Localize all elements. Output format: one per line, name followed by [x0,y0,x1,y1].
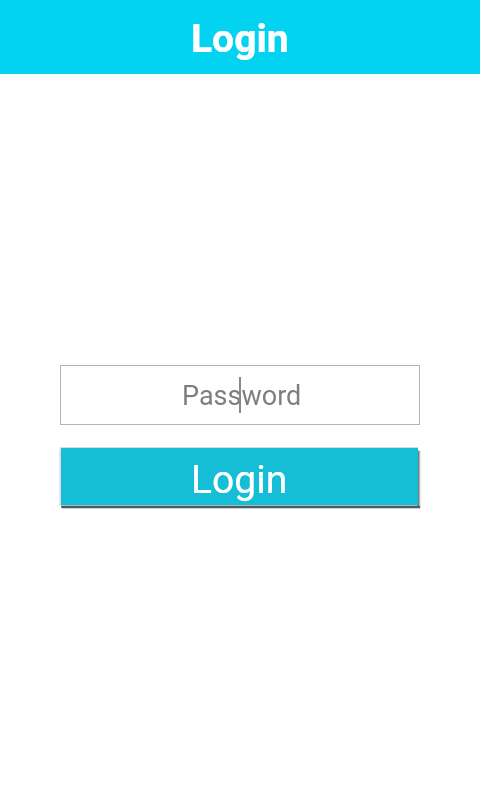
button[interactable]: Login [61,448,418,505]
staticText: Login [191,457,288,503]
button[interactable]: Password input field [60,365,420,425]
staticText: Password [182,380,302,412]
staticText: Login [191,16,289,62]
